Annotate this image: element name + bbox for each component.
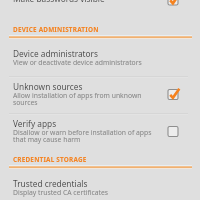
- other: Disabled: [165, 124, 181, 140]
- other: Enabled: [165, 87, 181, 103]
- button[interactable]: Make passwords visible: [0, 0, 200, 9]
- staticText: View or deactivate device administrators: [13, 58, 142, 67]
- staticText: Allow installation of apps from unknown …: [13, 91, 155, 107]
- staticText: DEVICE ADMINISTRATION: [13, 25, 99, 34]
- other: Enabled: [165, 0, 181, 5]
- staticText: Trusted credentials: [13, 178, 88, 189]
- staticText: Make passwords visible: [13, 0, 105, 2]
- staticText: CREDENTIAL STORAGE: [13, 155, 87, 164]
- staticText: Device administrators: [13, 48, 98, 59]
- button[interactable]: Verify apps: [0, 118, 200, 145]
- staticText: Display trusted CA certificates: [13, 188, 109, 197]
- staticText: Unknown sources: [13, 81, 83, 92]
- button[interactable]: Trusted credentials: [0, 178, 200, 198]
- staticText: Verify apps: [13, 118, 57, 129]
- button[interactable]: Device administrators: [0, 48, 200, 68]
- staticText: Disallow or warn before installation of …: [13, 128, 155, 144]
- button[interactable]: Unknown sources: [0, 81, 200, 108]
